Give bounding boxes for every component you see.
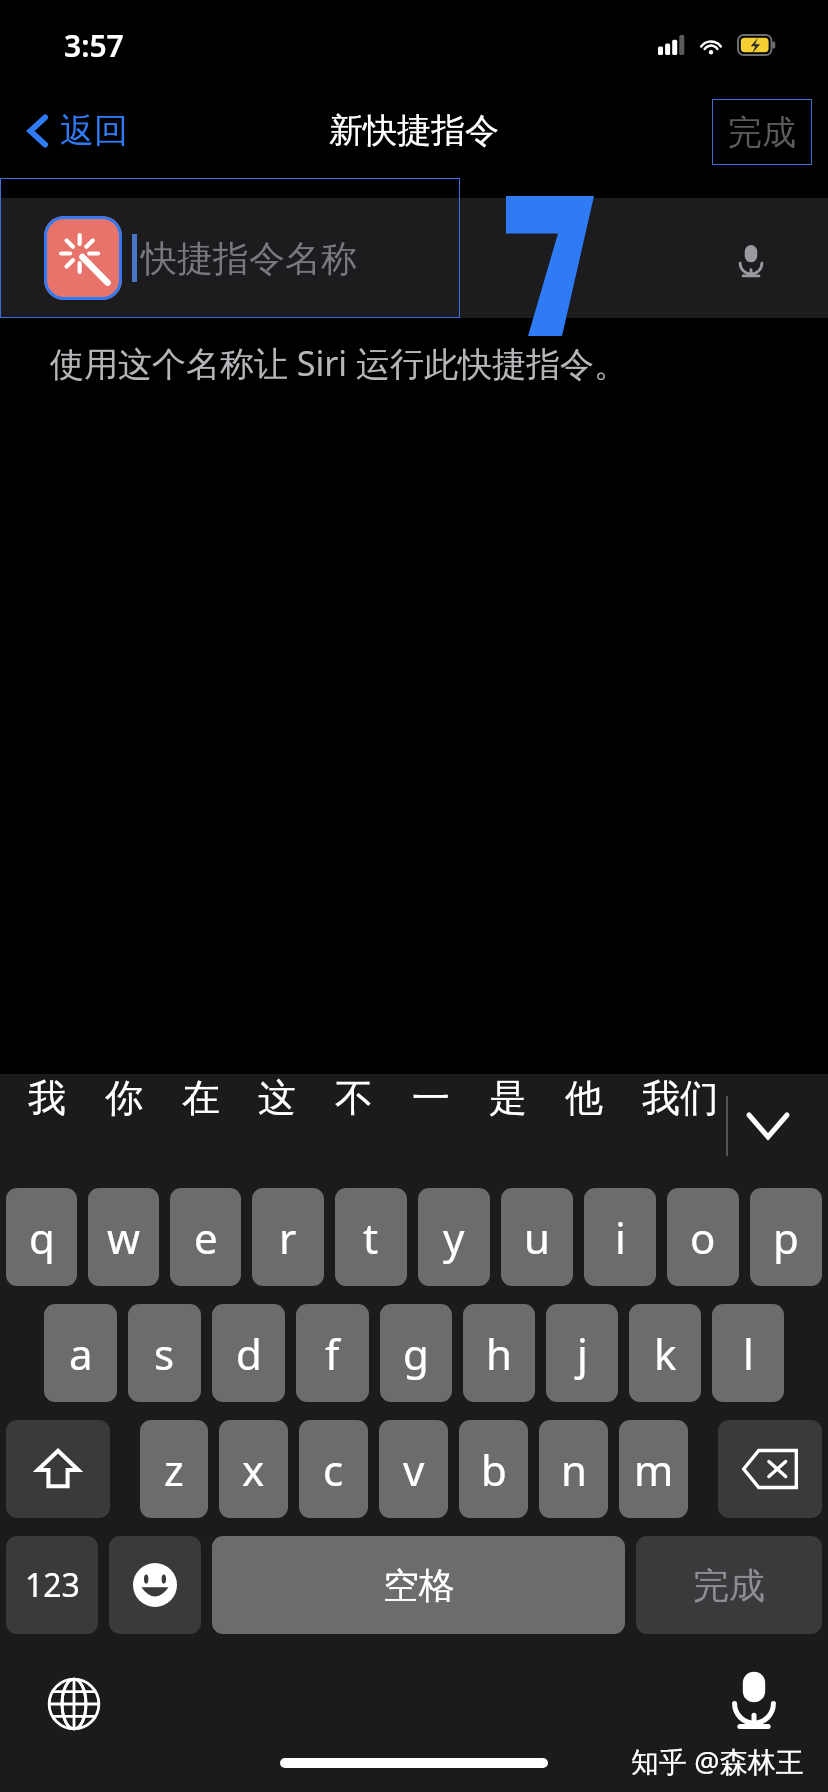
- staticText: i: [615, 1209, 626, 1266]
- staticText: k: [654, 1325, 677, 1382]
- staticText: j: [577, 1325, 588, 1382]
- button[interactable]: Voice input: [722, 1668, 786, 1732]
- staticText: 知乎 @森林王: [631, 1742, 804, 1780]
- button[interactable]: 这: [256, 1074, 298, 1122]
- button[interactable]: u: [501, 1188, 573, 1286]
- button[interactable]: Backspace: [718, 1420, 822, 1518]
- staticText: b: [481, 1441, 507, 1498]
- staticText: 完成: [728, 111, 796, 154]
- button[interactable]: 你: [103, 1074, 145, 1122]
- button[interactable]: a: [44, 1304, 117, 1402]
- staticText: y: [443, 1209, 465, 1266]
- staticText: 你: [105, 1074, 143, 1122]
- staticText: c: [323, 1441, 344, 1498]
- staticText: u: [524, 1209, 550, 1266]
- button[interactable]: x: [219, 1420, 288, 1518]
- button[interactable]: 完成: [636, 1536, 822, 1634]
- staticText: e: [194, 1209, 218, 1266]
- button[interactable]: j: [546, 1304, 618, 1402]
- staticText: v: [403, 1441, 425, 1498]
- button[interactable]: w: [88, 1188, 159, 1286]
- button[interactable]: Shortcut icon: [44, 216, 122, 300]
- button[interactable]: v: [379, 1420, 448, 1518]
- staticText: g: [403, 1325, 429, 1382]
- staticText: 使用这个名称让 Siri 运行此快捷指令。: [50, 340, 628, 386]
- button[interactable]: Shift: [6, 1420, 110, 1518]
- staticText: 一: [412, 1074, 450, 1122]
- button[interactable]: 不: [333, 1074, 375, 1122]
- staticText: w: [107, 1209, 141, 1266]
- button[interactable]: g: [380, 1304, 452, 1402]
- button[interactable]: r: [252, 1188, 324, 1286]
- staticText: 123: [25, 1563, 80, 1607]
- staticText: 这: [258, 1074, 296, 1122]
- button[interactable]: Dictation: [728, 238, 774, 284]
- button[interactable]: t: [335, 1188, 407, 1286]
- button[interactable]: k: [629, 1304, 701, 1402]
- staticText: 我: [28, 1074, 66, 1122]
- staticText: n: [561, 1441, 587, 1498]
- button[interactable]: 在: [180, 1074, 222, 1122]
- button[interactable]: b: [459, 1420, 528, 1518]
- button[interactable]: 空格: [212, 1536, 625, 1634]
- button[interactable]: 123: [6, 1536, 98, 1634]
- button[interactable]: 我: [26, 1074, 68, 1122]
- staticText: 不: [335, 1074, 373, 1122]
- button[interactable]: q: [6, 1188, 77, 1286]
- staticText: t: [363, 1209, 379, 1266]
- button[interactable]: d: [212, 1304, 285, 1402]
- button[interactable]: 完成: [712, 99, 812, 165]
- button[interactable]: n: [539, 1420, 608, 1518]
- staticText: 3:57: [64, 25, 124, 66]
- button[interactable]: Emoji: [109, 1536, 201, 1634]
- staticText: h: [486, 1325, 512, 1382]
- staticText: z: [164, 1441, 184, 1498]
- button[interactable]: 返回: [18, 103, 136, 158]
- staticText: p: [773, 1209, 799, 1266]
- staticText: o: [690, 1209, 716, 1266]
- button[interactable]: Change keyboard: [42, 1672, 106, 1736]
- staticText: 快捷指令名称: [141, 236, 357, 281]
- button[interactable]: l: [712, 1304, 784, 1402]
- button[interactable]: e: [170, 1188, 241, 1286]
- button[interactable]: Collapse suggestions: [740, 1098, 796, 1154]
- button[interactable]: f: [296, 1304, 369, 1402]
- button[interactable]: p: [750, 1188, 822, 1286]
- button[interactable]: [0, 178, 460, 318]
- staticText: 他: [565, 1074, 603, 1122]
- button[interactable]: m: [619, 1420, 688, 1518]
- staticText: 完成: [693, 1563, 765, 1608]
- staticText: a: [69, 1325, 93, 1382]
- staticText: 在: [182, 1074, 220, 1122]
- staticText: 是: [489, 1074, 527, 1122]
- staticText: 新快捷指令: [329, 109, 499, 152]
- button[interactable]: 是: [487, 1074, 529, 1122]
- button[interactable]: c: [299, 1420, 368, 1518]
- staticText: 返回: [60, 109, 128, 152]
- button[interactable]: 一: [410, 1074, 452, 1122]
- staticText: r: [279, 1209, 297, 1266]
- button[interactable]: z: [140, 1420, 208, 1518]
- staticText: f: [325, 1325, 340, 1382]
- button[interactable]: o: [667, 1188, 739, 1286]
- button[interactable]: 他: [563, 1074, 605, 1122]
- staticText: 我们: [642, 1074, 718, 1122]
- staticText: q: [29, 1209, 55, 1266]
- button[interactable]: 我们: [640, 1074, 720, 1122]
- staticText: m: [634, 1441, 674, 1498]
- staticText: 空格: [383, 1563, 455, 1608]
- staticText: x: [242, 1441, 265, 1498]
- button[interactable]: i: [584, 1188, 656, 1286]
- staticText: s: [154, 1325, 175, 1382]
- button[interactable]: s: [128, 1304, 201, 1402]
- button[interactable]: h: [463, 1304, 535, 1402]
- button[interactable]: y: [418, 1188, 490, 1286]
- staticText: d: [236, 1325, 262, 1382]
- staticText: l: [743, 1325, 754, 1382]
